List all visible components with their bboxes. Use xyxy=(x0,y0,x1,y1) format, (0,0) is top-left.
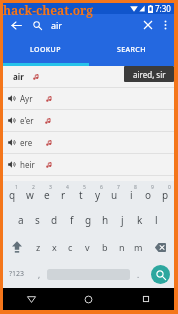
button[interactable]: 7 xyxy=(106,181,123,206)
button[interactable]: SEARCH xyxy=(88,36,174,63)
button[interactable]: More options xyxy=(158,14,172,36)
staticText: e xyxy=(44,188,50,202)
staticText: t xyxy=(79,188,83,202)
staticText: aired, sir xyxy=(133,69,166,80)
staticText: u xyxy=(111,188,118,202)
button[interactable]: Ayr xyxy=(3,88,174,109)
button[interactable]: k xyxy=(131,206,148,234)
staticText: LOOKUP xyxy=(30,45,61,55)
staticText: hack-cheat.org xyxy=(3,2,94,18)
button[interactable]: 0 xyxy=(157,181,174,206)
staticText: Ayr xyxy=(20,93,33,104)
staticText: 2 xyxy=(32,184,35,191)
staticText: g xyxy=(85,213,92,227)
staticText: i xyxy=(130,188,133,202)
button[interactable]: Recents xyxy=(117,288,174,310)
staticText: 6 xyxy=(100,184,103,191)
button[interactable]: Back xyxy=(3,288,60,310)
button[interactable]: n xyxy=(113,234,130,260)
button[interactable]: c xyxy=(62,234,79,260)
staticText: c xyxy=(68,241,73,253)
button[interactable]: z xyxy=(30,234,46,260)
button[interactable]: a xyxy=(12,206,29,234)
staticText: k xyxy=(137,213,143,227)
button[interactable]: Shift xyxy=(3,234,30,260)
button[interactable]: Search xyxy=(151,265,170,284)
button[interactable]: 5 xyxy=(72,181,89,206)
button[interactable]: s xyxy=(29,206,46,234)
button[interactable]: ere xyxy=(3,132,174,153)
staticText: 3 xyxy=(49,184,52,191)
staticText: f xyxy=(70,213,74,227)
staticText: air xyxy=(51,19,63,31)
staticText: ere xyxy=(20,137,33,148)
staticText: , xyxy=(38,269,41,280)
staticText: 8 xyxy=(134,184,137,191)
staticText: l xyxy=(155,213,158,227)
staticText: x xyxy=(52,241,57,253)
button[interactable]: 2 xyxy=(21,181,38,206)
staticText: SEARCH xyxy=(117,45,146,55)
button[interactable]: 9 xyxy=(140,181,157,206)
staticText: 5 xyxy=(83,184,86,191)
staticText: h xyxy=(102,213,109,227)
staticText: 7 xyxy=(117,184,120,191)
button[interactable]: m xyxy=(130,234,147,260)
staticText: air xyxy=(13,71,24,82)
button[interactable]: d xyxy=(46,206,63,234)
button[interactable]: x xyxy=(46,234,62,260)
staticText: 0 xyxy=(168,184,171,191)
staticText: 7:30 xyxy=(155,3,171,14)
button[interactable]: l xyxy=(148,206,165,234)
staticText: z xyxy=(36,241,41,253)
button[interactable]: LOOKUP xyxy=(3,36,88,63)
staticText: 4 xyxy=(66,184,69,191)
button[interactable]: e'er xyxy=(3,110,174,131)
button[interactable]: 3 xyxy=(38,181,55,206)
staticText: w xyxy=(26,188,34,202)
staticText: s xyxy=(35,213,40,227)
button[interactable]: Back xyxy=(3,14,29,36)
staticText: r xyxy=(61,188,66,202)
staticText: . xyxy=(137,269,140,280)
staticText: 9 xyxy=(151,184,154,191)
button[interactable]: Clear query xyxy=(138,14,158,36)
staticText: o xyxy=(145,188,152,202)
button[interactable]: , xyxy=(31,260,47,288)
staticText: j xyxy=(121,213,124,227)
staticText: m xyxy=(134,241,143,253)
button[interactable]: 8 xyxy=(123,181,140,206)
button[interactable]: b xyxy=(96,234,113,260)
staticText: v xyxy=(85,241,90,253)
button[interactable]: 1 xyxy=(3,181,21,206)
button[interactable]: v xyxy=(79,234,96,260)
staticText: p xyxy=(162,188,169,202)
staticText: a xyxy=(18,213,24,227)
button[interactable]: air xyxy=(3,66,174,87)
staticText: b xyxy=(102,241,108,253)
button[interactable]: heir xyxy=(3,154,174,175)
staticText: d xyxy=(51,213,58,227)
button[interactable]: 6 xyxy=(89,181,106,206)
staticText: e'er xyxy=(20,115,34,126)
button[interactable]: . xyxy=(130,260,146,288)
button[interactable]: Backspace xyxy=(147,234,174,260)
staticText: heir xyxy=(20,159,35,170)
staticText: ?123 xyxy=(9,269,25,279)
button[interactable]: Home xyxy=(60,288,117,310)
button[interactable]: h xyxy=(97,206,114,234)
button[interactable]: ?123 xyxy=(3,260,31,288)
staticText: q xyxy=(9,188,16,202)
button[interactable]: j xyxy=(114,206,131,234)
staticText: n xyxy=(119,241,125,253)
staticText: y xyxy=(95,188,101,202)
staticText: 1 xyxy=(15,184,18,191)
button[interactable]: g xyxy=(80,206,97,234)
button[interactable]: 4 xyxy=(55,181,72,206)
button[interactable]: f xyxy=(63,206,80,234)
